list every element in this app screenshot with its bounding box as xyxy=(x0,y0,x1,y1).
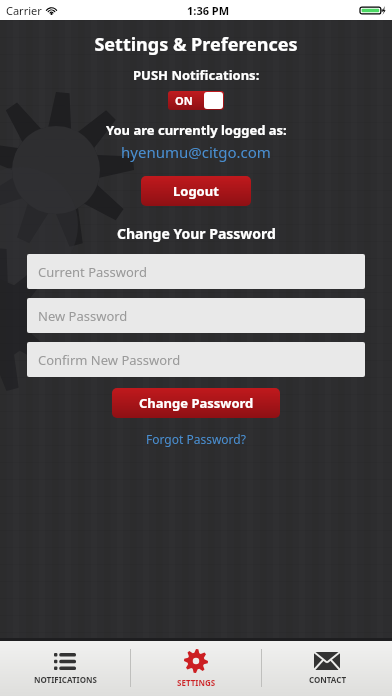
staticText: NOTIFICATIONS xyxy=(34,674,97,685)
button[interactable]: Change Password xyxy=(112,388,280,418)
staticText: 1:36 PM xyxy=(187,3,230,18)
staticText: SETTINGS xyxy=(177,677,216,688)
staticText: Change Your Password xyxy=(117,224,276,243)
button[interactable]: CONTACT xyxy=(262,641,392,696)
staticText: Confirm New Password xyxy=(38,351,181,369)
staticText: You are currently logged as: xyxy=(106,121,287,139)
staticText: Logout xyxy=(173,182,219,200)
button[interactable]: Current Password xyxy=(27,254,365,289)
staticText: ON xyxy=(175,93,193,108)
button[interactable]: NOTIFICATIONS xyxy=(0,641,130,696)
staticText: New Password xyxy=(38,307,128,325)
staticText: Change Password xyxy=(139,394,254,412)
button[interactable]: Forgot Password? xyxy=(140,429,252,449)
staticText: hyenumu@citgo.com xyxy=(121,142,271,162)
button[interactable]: New Password xyxy=(27,298,365,333)
staticText: Forgot Password? xyxy=(146,431,246,447)
button[interactable]: Logout xyxy=(141,176,251,206)
staticText: Current Password xyxy=(38,263,147,281)
staticText: Carrier xyxy=(6,3,42,18)
button[interactable]: Confirm New Password xyxy=(27,342,365,377)
button[interactable]: SETTINGS xyxy=(131,641,261,696)
staticText: CONTACT xyxy=(309,674,346,685)
button[interactable]: PUSH notifications toggle, on xyxy=(168,91,224,110)
staticText: Settings & Preferences xyxy=(94,32,298,57)
staticText: PUSH Notifications: xyxy=(133,66,260,84)
